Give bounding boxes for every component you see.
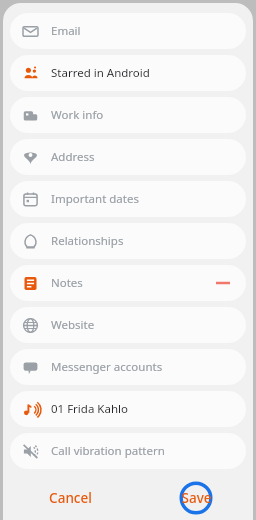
- button[interactable]: Address: [10, 139, 246, 175]
- button[interactable]: Messenger accounts: [10, 349, 246, 385]
- staticText: Email: [51, 23, 81, 39]
- button[interactable]: Call vibration pattern: [10, 433, 246, 469]
- staticText: Starred in Android: [51, 65, 150, 81]
- button[interactable]: Relationships: [10, 223, 246, 259]
- button[interactable]: Notes: [10, 265, 246, 301]
- button[interactable]: Cancel: [41, 485, 100, 511]
- staticText: Relationships: [51, 233, 124, 249]
- staticText: Address: [51, 149, 95, 165]
- staticText: Cancel: [49, 489, 92, 507]
- button[interactable]: Email: [10, 13, 246, 49]
- staticText: Important dates: [51, 191, 139, 207]
- button[interactable]: Work info: [10, 97, 246, 133]
- button[interactable]: Remove Notes: [213, 273, 233, 293]
- staticText: Website: [51, 317, 95, 333]
- button[interactable]: 01 Frida Kahlo: [10, 391, 246, 427]
- staticText: Notes: [51, 275, 83, 291]
- staticText: Call vibration pattern: [51, 443, 165, 459]
- staticText: Messenger accounts: [51, 359, 163, 375]
- staticText: Work info: [51, 107, 104, 123]
- staticText: Save: [181, 489, 212, 507]
- button[interactable]: Important dates: [10, 181, 246, 217]
- button[interactable]: Website: [10, 307, 246, 343]
- button[interactable]: Starred in Android: [10, 55, 246, 91]
- staticText: 01 Frida Kahlo: [51, 401, 128, 417]
- button[interactable]: Save: [179, 481, 213, 515]
